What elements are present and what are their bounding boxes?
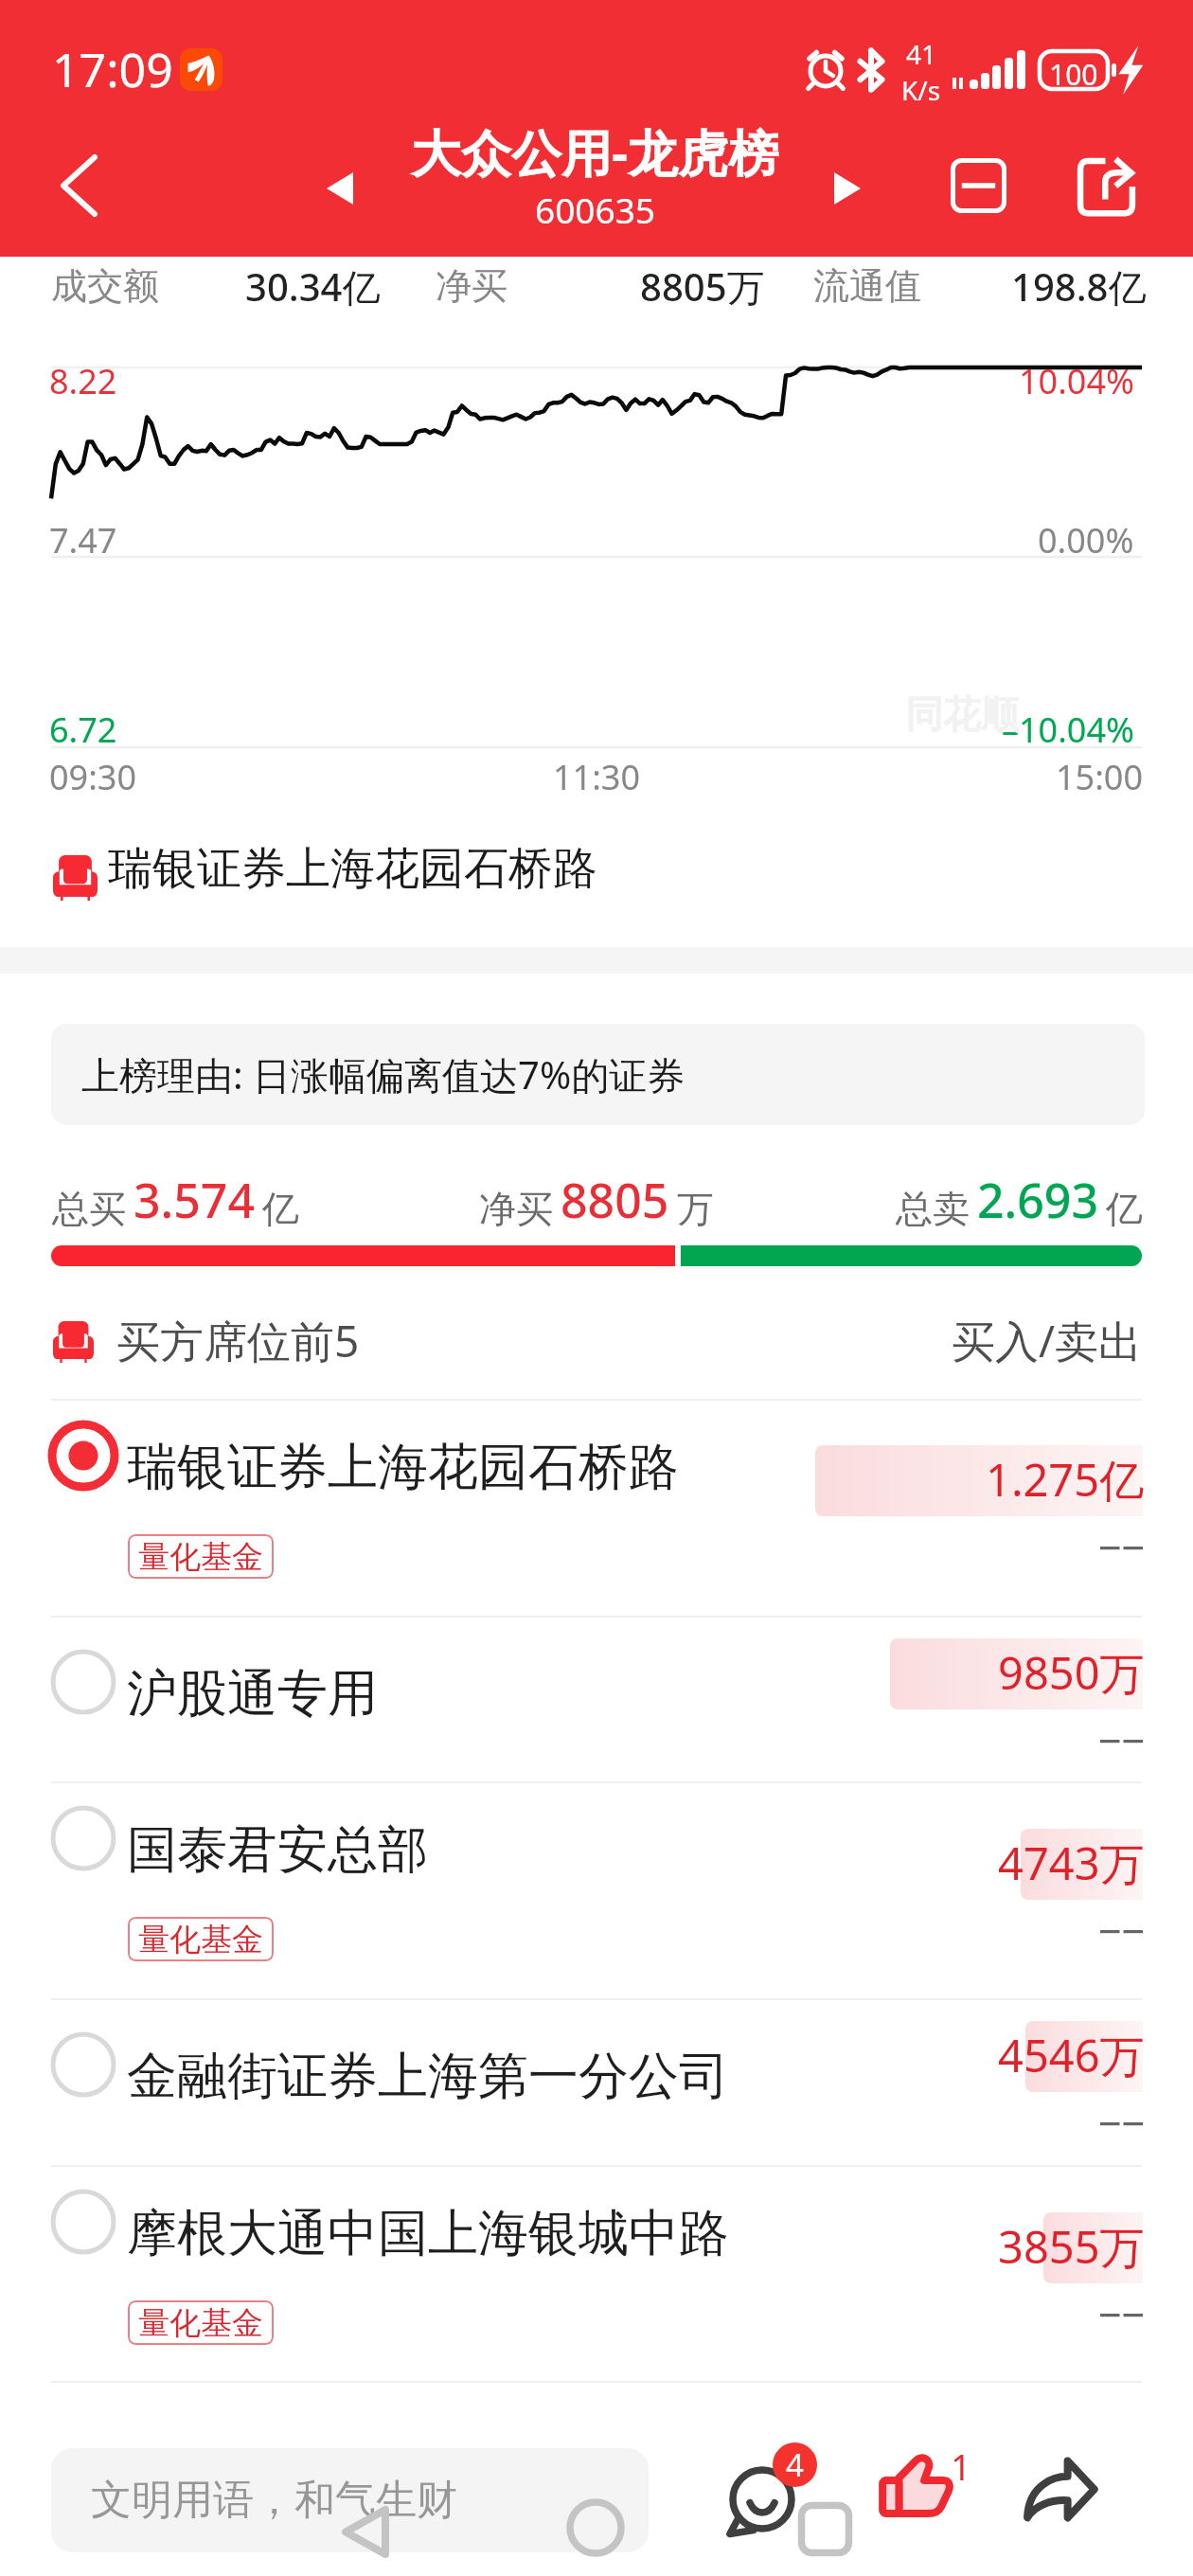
staticText: 198.8亿: [1011, 260, 1147, 313]
button[interactable]: Next stock: [820, 161, 875, 216]
staticText: 10.04%: [1019, 358, 1134, 404]
button[interactable]: Previous stock: [312, 161, 367, 216]
staticText: 6.72: [49, 707, 117, 753]
button[interactable]: 上榜理由: 日涨幅偏离值达7%的证券: [51, 1024, 1145, 1125]
staticText: 4: [786, 2443, 804, 2486]
staticText: 上榜理由: 日涨幅偏离值达7%的证券: [81, 1048, 686, 1100]
button[interactable]: Minimize: [928, 138, 1027, 238]
staticText: 大众公用-龙虎榜: [411, 117, 778, 186]
staticText: 瑞银证券上海花园石桥路: [108, 841, 597, 897]
staticText: 万: [677, 1186, 714, 1232]
staticText: 11:30: [553, 754, 641, 796]
button[interactable]: Share: [1056, 137, 1155, 237]
staticText: 买入/卖出: [952, 1311, 1143, 1370]
staticText: 总卖: [896, 1186, 970, 1232]
button[interactable]: 沪股通专用: [0, 1618, 1193, 1783]
staticText: 8805: [561, 1168, 669, 1232]
staticText: 17:09: [52, 37, 173, 101]
button[interactable]: 金融街证券上海第一分公司: [0, 2000, 1193, 2167]
staticText: 亿: [1106, 1186, 1143, 1232]
staticText: 30.34亿: [245, 260, 381, 313]
staticText: 量化基金: [138, 1920, 263, 1959]
button[interactable]: 摩根大通中国上海银城中路: [0, 2167, 1193, 2383]
button[interactable]: 国泰君安总部: [0, 1783, 1193, 2000]
staticText: 3.574: [134, 1168, 255, 1232]
button[interactable]: 文明用语，和气生财: [51, 2448, 649, 2552]
staticText: 1.275亿: [986, 1449, 1145, 1510]
staticText: K/s: [901, 72, 941, 108]
staticText: 7.47: [49, 517, 117, 563]
staticText: 8.22: [49, 358, 117, 404]
staticText: 量化基金: [138, 2303, 263, 2343]
staticText: 1: [951, 2442, 971, 2491]
staticText: 净买: [436, 263, 507, 309]
staticText: 100: [1049, 55, 1098, 94]
staticText: 总买: [52, 1186, 126, 1232]
staticText: 0.00%: [1038, 517, 1134, 563]
staticText: 600635: [535, 186, 655, 233]
button[interactable]: Back: [0, 125, 142, 257]
staticText: 亿: [262, 1186, 299, 1232]
staticText: 摩根大通中国上海银城中路: [127, 2202, 729, 2265]
staticText: 3855万: [998, 2216, 1145, 2277]
staticText: 41: [906, 36, 937, 72]
staticText: 4743万: [998, 1833, 1145, 1893]
button[interactable]: 瑞银证券上海花园石桥路: [0, 796, 1193, 947]
button[interactable]: Like: [881, 2453, 975, 2548]
staticText: 流通值: [813, 263, 921, 309]
staticText: 9850万: [998, 1642, 1145, 1703]
staticText: 沪股通专用: [127, 1662, 378, 1726]
staticText: 买方席位前5: [116, 1311, 360, 1370]
staticText: 15:00: [1056, 754, 1144, 796]
staticText: –10.04%: [1002, 707, 1134, 753]
staticText: 2.693: [977, 1168, 1098, 1232]
staticText: 净买: [479, 1186, 553, 1232]
staticText: 量化基金: [138, 1537, 263, 1577]
staticText: 同花顺: [905, 690, 1019, 738]
staticText: 09:30: [49, 754, 137, 796]
staticText: 成交额: [51, 263, 159, 309]
staticText: 4546万: [998, 2025, 1145, 2085]
staticText: 文明用语，和气生财: [91, 2475, 457, 2526]
button[interactable]: 瑞银证券上海花园石桥路: [0, 1401, 1193, 1618]
staticText: 瑞银证券上海花园石桥路: [127, 1436, 679, 1499]
button[interactable]: Comments: [720, 2442, 824, 2536]
button[interactable]: Share: [1024, 2459, 1114, 2544]
staticText: 国泰君安总部: [127, 1818, 428, 1882]
staticText: 8805万: [640, 260, 765, 313]
staticText: 金融街证券上海第一分公司: [127, 2045, 729, 2108]
